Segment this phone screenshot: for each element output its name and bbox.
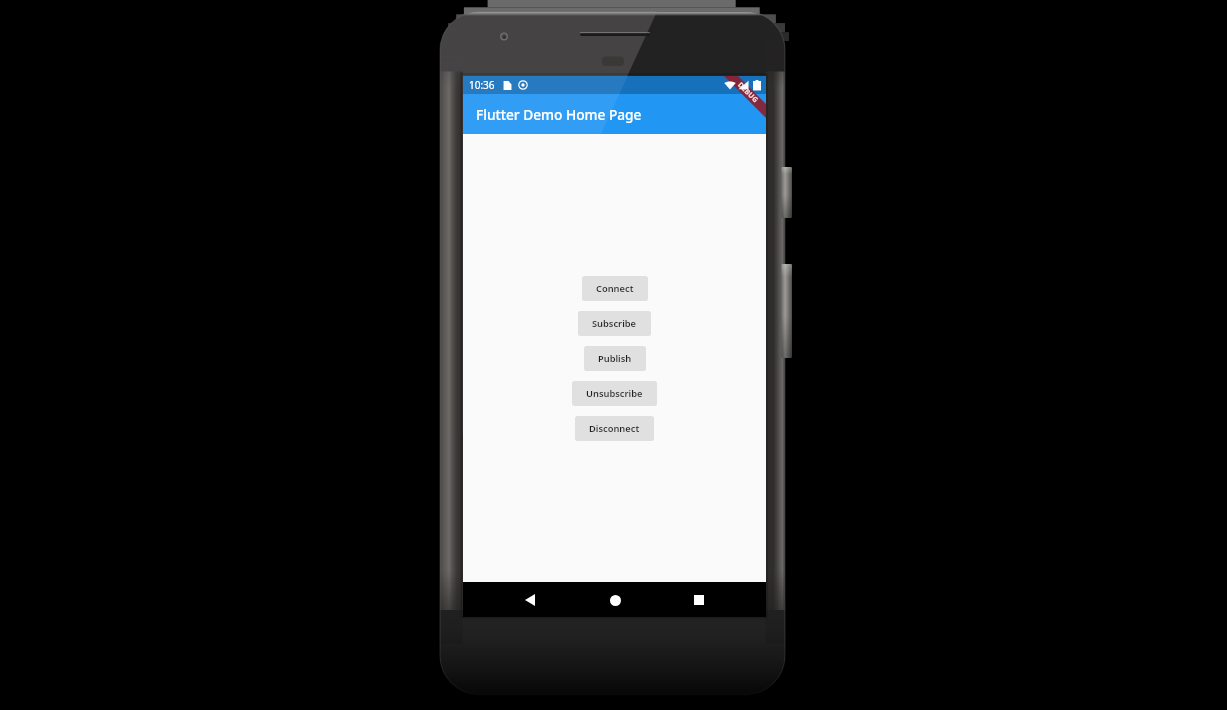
button[interactable]: Disconnect bbox=[575, 416, 654, 441]
button[interactable]: Recent apps bbox=[682, 583, 716, 617]
button[interactable]: Unsubscribe bbox=[572, 381, 657, 406]
button[interactable]: Publish bbox=[584, 346, 646, 371]
staticText: Subscribe bbox=[592, 317, 637, 330]
button[interactable]: Back bbox=[513, 583, 547, 617]
button[interactable]: Connect bbox=[582, 276, 648, 301]
staticText: DEBUG bbox=[735, 80, 761, 106]
staticText: 10:36 bbox=[469, 78, 495, 92]
staticText: Connect bbox=[596, 282, 634, 295]
staticText: Disconnect bbox=[589, 422, 640, 435]
button[interactable]: Home bbox=[598, 583, 632, 617]
staticText: Unsubscribe bbox=[586, 387, 643, 400]
staticText: Publish bbox=[598, 352, 632, 365]
staticText: Flutter Demo Home Page bbox=[476, 105, 642, 124]
button[interactable]: Subscribe bbox=[578, 311, 651, 336]
